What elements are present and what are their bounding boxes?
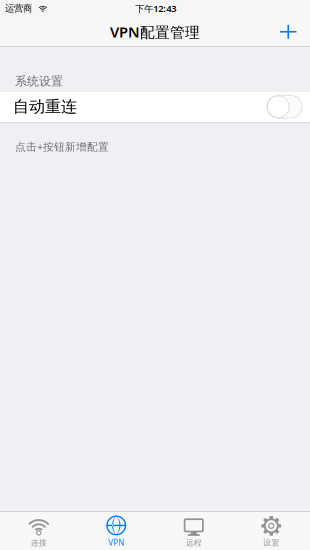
button[interactable]: 连接 (0, 511, 77, 550)
staticText: 自动重连 (13, 97, 77, 117)
staticText: 连接 (31, 538, 47, 548)
staticText: 点击+按钮新增配置 (15, 139, 109, 154)
button[interactable]: VPN (77, 511, 155, 550)
button[interactable]: 自动重连 (0, 91, 310, 122)
button[interactable]: 新增配置 (266, 25, 310, 39)
staticText: VPN (108, 537, 124, 548)
button[interactable]: 远程 (155, 511, 232, 550)
staticText: 系统设置 (15, 74, 63, 89)
button[interactable]: 设置 (232, 511, 310, 550)
staticText: 运营商 (5, 3, 32, 14)
staticText: 设置 (263, 538, 279, 548)
staticText: 下午12:43 (135, 2, 176, 15)
staticText: VPN配置管理 (110, 22, 200, 42)
staticText: 远程 (186, 538, 202, 548)
